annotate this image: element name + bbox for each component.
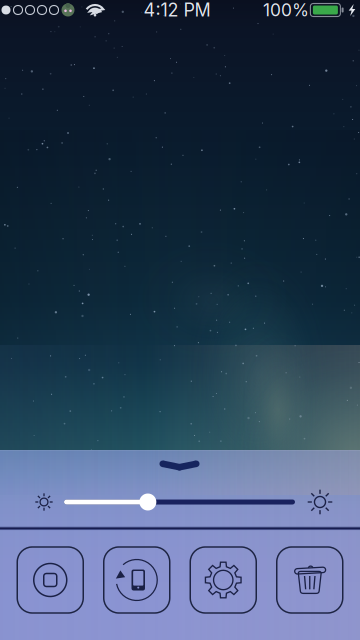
staticText: 4:12 PM — [143, 0, 210, 21]
button[interactable]: Settings — [190, 547, 256, 613]
staticText: 100% — [263, 0, 309, 20]
button[interactable]: Rotation Lock — [104, 547, 170, 613]
button[interactable]: Clear — [277, 547, 343, 613]
button[interactable]: AssistiveTouch — [17, 547, 83, 613]
